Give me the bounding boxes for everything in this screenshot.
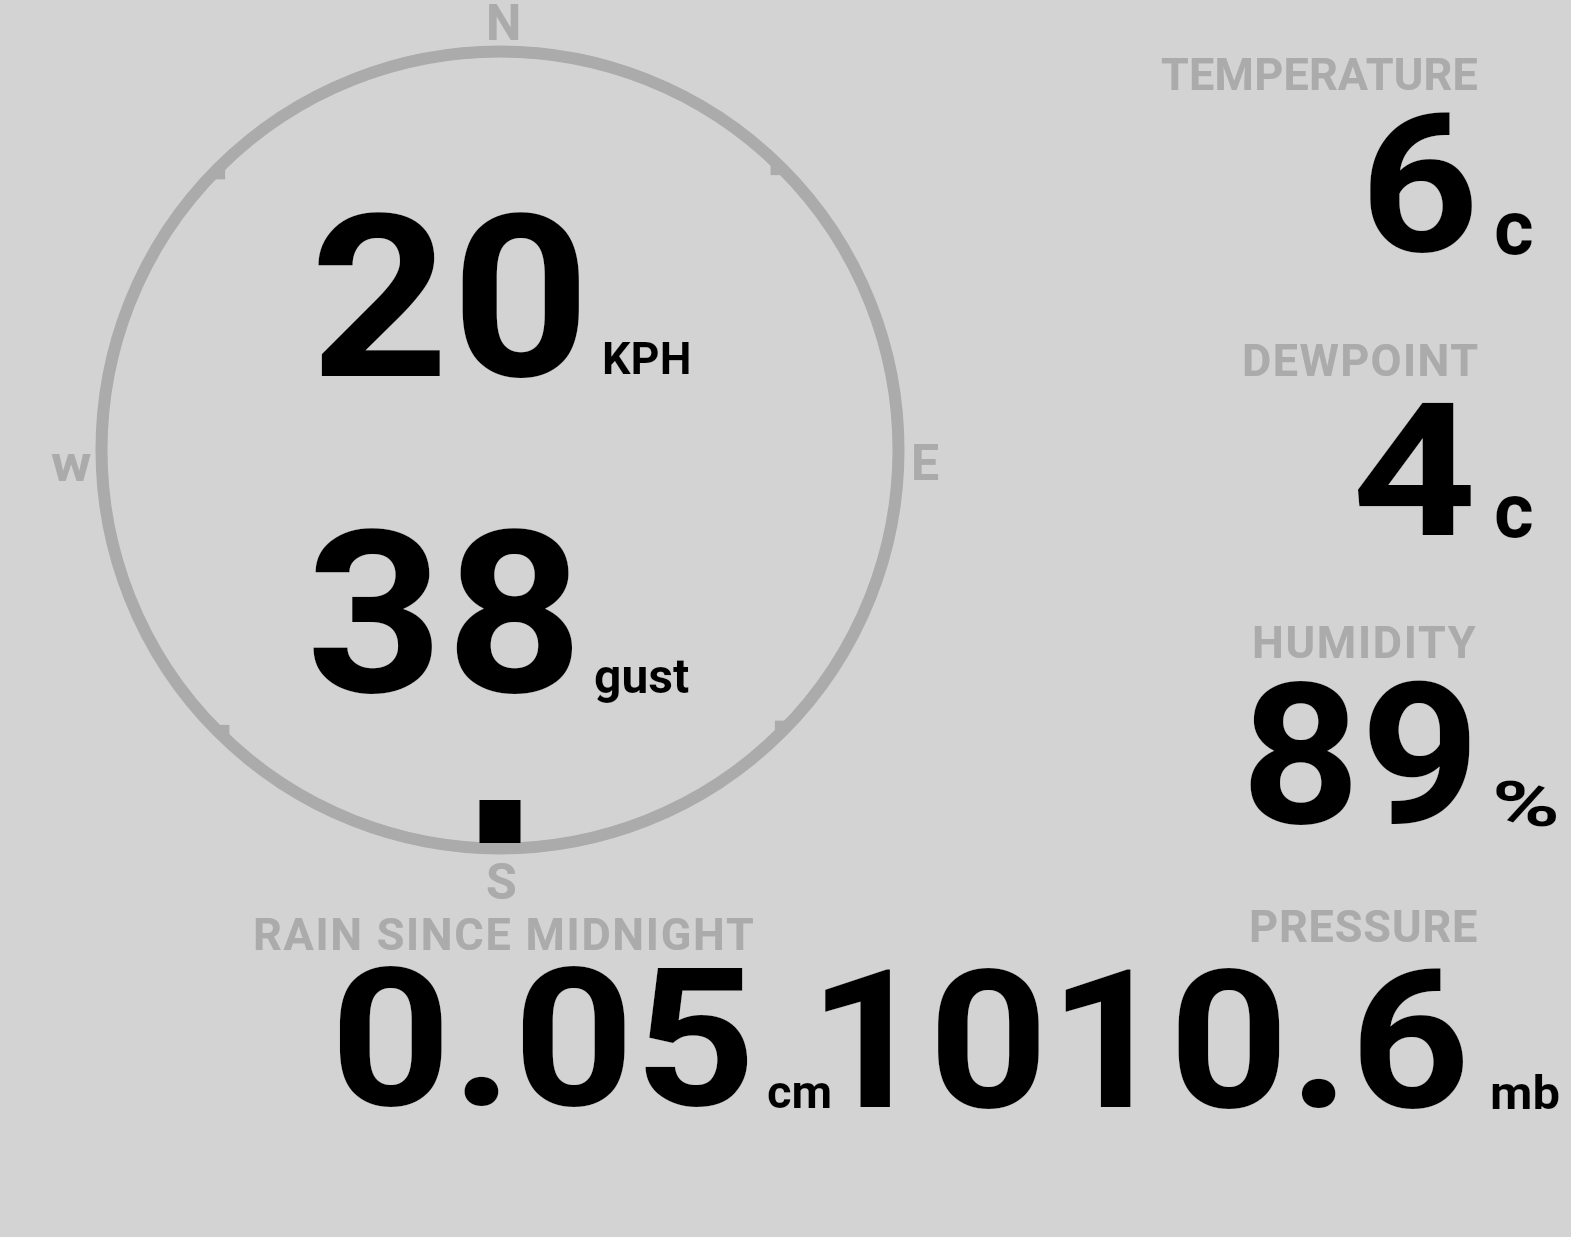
staticText: cm <box>767 1064 833 1119</box>
staticText: 1010.6 <box>808 928 1470 1154</box>
staticText: RAIN SINCE MIDNIGHT <box>253 908 756 961</box>
staticText: HUMIDITY <box>1252 616 1478 669</box>
staticText: N <box>486 0 522 53</box>
staticText: TEMPERATURE <box>1161 48 1479 101</box>
button[interactable]: Temperature 6 degrees C <box>1140 45 1571 260</box>
staticText: w <box>51 435 92 494</box>
staticText: 89 <box>1241 641 1480 871</box>
staticText: PRESSURE <box>1249 900 1479 953</box>
staticText: 6 <box>1360 72 1479 298</box>
staticText: gust <box>594 648 690 704</box>
staticText: 4 <box>1352 362 1477 580</box>
staticText: c <box>1494 466 1534 555</box>
staticText: mb <box>1490 1066 1560 1120</box>
staticText: DEWPOINT <box>1242 334 1480 387</box>
staticText: KPH <box>602 332 692 385</box>
staticText: % <box>1492 768 1560 841</box>
staticText: E <box>911 434 940 493</box>
button[interactable]: Pressure 1010.6 mb <box>845 896 1571 1116</box>
staticText: 20 <box>310 166 593 431</box>
staticText: S <box>486 853 517 912</box>
button[interactable]: Wind direction compass, 20 KPH, gusting … <box>100 50 900 850</box>
staticText: 38 <box>306 482 586 747</box>
staticText: c <box>1494 183 1534 272</box>
staticText: 0.05 <box>330 926 757 1152</box>
button[interactable]: Dewpoint 4 degrees C <box>1140 330 1571 545</box>
button[interactable]: Rain since midnight 0.05 cm <box>240 900 840 1115</box>
button[interactable]: Humidity 89 percent <box>1140 612 1571 832</box>
